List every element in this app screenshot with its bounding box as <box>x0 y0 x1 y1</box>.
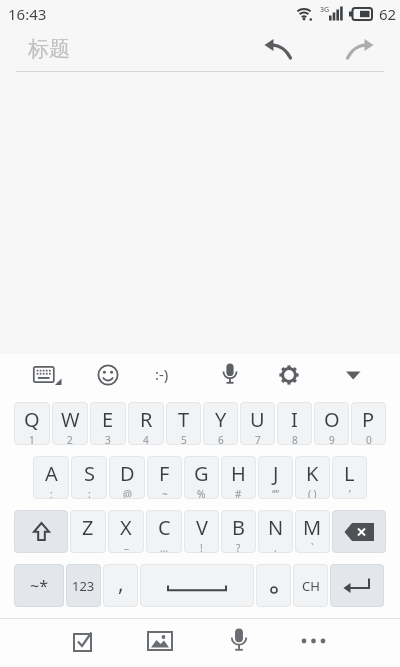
staticText: P <box>362 406 375 433</box>
button[interactable]: S <box>71 456 107 499</box>
staticText: 16:43 <box>8 4 47 24</box>
staticText: 8 <box>292 433 298 445</box>
staticText: ` <box>311 541 314 553</box>
staticText: X <box>120 514 132 541</box>
staticText: B <box>232 514 245 541</box>
staticText: ( ) <box>308 487 317 499</box>
button[interactable]: H <box>221 456 256 499</box>
button[interactable]: R <box>128 402 164 445</box>
button[interactable] <box>264 38 294 60</box>
staticText: 0 <box>366 433 372 445</box>
button[interactable]: T <box>166 402 201 445</box>
staticText: % <box>197 487 206 499</box>
staticText: “” <box>272 487 280 499</box>
button[interactable]: C <box>146 510 182 553</box>
staticText: ! <box>200 541 203 553</box>
button[interactable]: K <box>295 456 330 499</box>
staticText: L <box>344 460 355 487</box>
button[interactable] <box>256 564 291 607</box>
button[interactable] <box>330 564 384 607</box>
staticText: F <box>159 460 170 487</box>
button[interactable]: U <box>240 402 275 445</box>
button[interactable] <box>346 371 361 380</box>
button[interactable]: 123 <box>66 564 101 607</box>
staticText: 7 <box>255 433 261 445</box>
staticText: R <box>140 406 153 433</box>
staticText: K <box>306 460 319 487</box>
button[interactable] <box>229 628 249 654</box>
staticText: # <box>235 487 242 499</box>
staticText: ; <box>50 487 53 499</box>
staticText: I <box>291 406 298 433</box>
button[interactable]: ~* <box>14 564 64 607</box>
button[interactable]: F <box>147 456 182 499</box>
staticText: 123 <box>72 577 95 595</box>
button[interactable] <box>344 38 374 60</box>
staticText: O <box>324 406 340 433</box>
staticText: U <box>250 406 265 433</box>
button[interactable]: M <box>295 510 330 553</box>
staticText: 3 <box>105 433 111 445</box>
staticText: ~ <box>162 487 168 499</box>
button[interactable]: P <box>351 402 386 445</box>
button[interactable]: , <box>103 564 138 607</box>
button[interactable]: CH <box>293 564 328 607</box>
button[interactable] <box>33 364 62 387</box>
staticText: C <box>158 514 171 541</box>
staticText: , <box>118 569 124 598</box>
staticText: _ <box>86 541 91 553</box>
staticText: D <box>120 460 135 487</box>
button[interactable]: Q <box>14 402 50 445</box>
button[interactable]: :-) <box>155 364 169 384</box>
staticText: . <box>274 541 277 553</box>
staticText: N <box>268 514 284 541</box>
button[interactable]: I <box>277 402 312 445</box>
button[interactable]: X <box>108 510 144 553</box>
staticText: T <box>178 406 190 433</box>
button[interactable] <box>301 638 326 644</box>
button[interactable]: W <box>52 402 88 445</box>
button[interactable] <box>14 510 68 553</box>
button[interactable]: O <box>314 402 349 445</box>
staticText: A <box>45 460 58 487</box>
staticText: 9 <box>329 433 335 445</box>
staticText: ~* <box>30 575 48 597</box>
staticText: @ <box>123 487 132 499</box>
staticText: … <box>160 541 168 553</box>
staticText: V <box>196 514 208 541</box>
button[interactable] <box>277 363 301 387</box>
staticText: J <box>273 460 279 487</box>
button[interactable]: A <box>33 456 69 499</box>
button[interactable] <box>220 363 240 387</box>
button[interactable]: D <box>109 456 145 499</box>
button[interactable] <box>96 363 120 387</box>
staticText: M <box>303 514 322 541</box>
staticText: Z <box>82 514 94 541</box>
staticText: 标题 <box>28 36 70 62</box>
staticText: 5 <box>181 433 187 445</box>
button[interactable]: Z <box>70 510 106 553</box>
button[interactable] <box>140 564 254 607</box>
staticText: W <box>61 406 80 433</box>
staticText: G <box>194 460 209 487</box>
button[interactable]: N <box>258 510 293 553</box>
staticText: 3G <box>320 5 330 15</box>
button[interactable]: B <box>221 510 256 553</box>
button[interactable]: L <box>332 456 367 499</box>
staticText: ? <box>236 541 241 553</box>
button[interactable] <box>147 628 173 654</box>
staticText: S <box>84 460 95 487</box>
staticText: Q <box>24 406 40 433</box>
button[interactable] <box>72 629 96 653</box>
button[interactable]: E <box>90 402 126 445</box>
button[interactable]: Y <box>203 402 238 445</box>
staticText: 62 <box>379 4 397 24</box>
button[interactable]: G <box>184 456 219 499</box>
staticText: – <box>124 541 129 553</box>
button[interactable]: J <box>258 456 293 499</box>
button[interactable]: V <box>184 510 219 553</box>
button[interactable] <box>332 510 386 553</box>
staticText: H <box>231 460 246 487</box>
staticText: 1 <box>29 433 35 445</box>
staticText: Y <box>215 406 227 433</box>
